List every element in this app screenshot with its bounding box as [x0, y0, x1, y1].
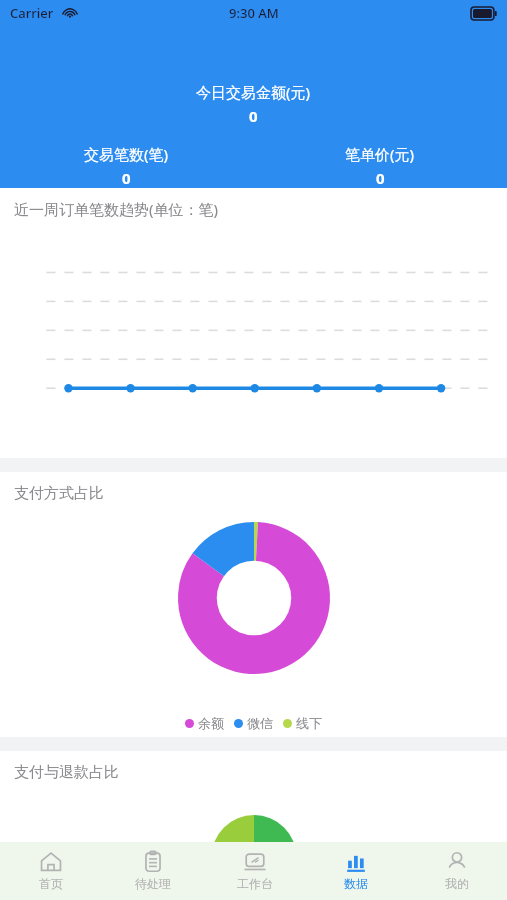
staticText: 交易笔数(笔)	[84, 144, 169, 164]
staticText: 首页	[39, 876, 63, 891]
staticText: 数据	[344, 876, 368, 891]
staticText: 近一周订单笔数趋势(单位：笔)	[14, 199, 219, 219]
staticText: 今日交易金额(元)	[196, 82, 311, 102]
staticText: 9:30 AM	[229, 4, 279, 22]
staticText: 待处理	[135, 876, 171, 891]
staticText: 0	[376, 168, 385, 188]
staticText: 0	[249, 106, 258, 126]
button[interactable]: 待处理	[102, 842, 204, 900]
staticText: 微信	[247, 715, 273, 731]
staticText: 工作台	[237, 876, 273, 891]
staticText: 笔单价(元)	[345, 144, 415, 164]
staticText: 我的	[445, 876, 469, 891]
button[interactable]: 我的	[406, 842, 507, 900]
button[interactable]: 工作台	[204, 842, 305, 900]
staticText: 0	[122, 168, 131, 188]
staticText: Carrier	[10, 4, 54, 22]
button[interactable]: 数据	[305, 842, 406, 900]
staticText: 线下	[296, 715, 322, 731]
staticText: 余额	[198, 715, 224, 731]
button[interactable]: 首页	[0, 842, 102, 900]
staticText: 支付方式占比	[14, 484, 104, 503]
staticText: 支付与退款占比	[14, 763, 119, 782]
